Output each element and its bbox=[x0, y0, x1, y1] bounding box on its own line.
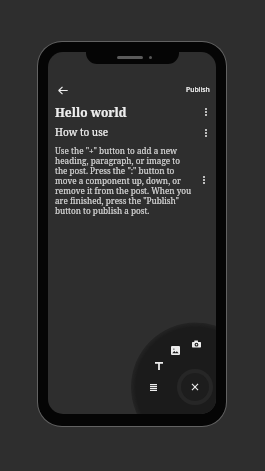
button[interactable]: More options bbox=[199, 126, 213, 140]
staticText: Hello world bbox=[55, 104, 127, 120]
button[interactable]: More options bbox=[197, 173, 211, 187]
staticText: Publish bbox=[186, 85, 210, 94]
button[interactable]: Camera bbox=[188, 336, 204, 352]
button[interactable]: Back bbox=[53, 80, 73, 100]
button[interactable]: Heading bbox=[151, 358, 167, 374]
button[interactable]: Paragraph bbox=[145, 379, 161, 395]
staticText: Use the "+" button to add a new heading,… bbox=[55, 145, 192, 216]
button[interactable]: Publish bbox=[182, 82, 214, 97]
staticText: How to use bbox=[55, 125, 109, 139]
button[interactable]: Image bbox=[167, 342, 183, 358]
button[interactable]: Close menu bbox=[177, 369, 213, 405]
button[interactable]: More options bbox=[199, 105, 213, 119]
